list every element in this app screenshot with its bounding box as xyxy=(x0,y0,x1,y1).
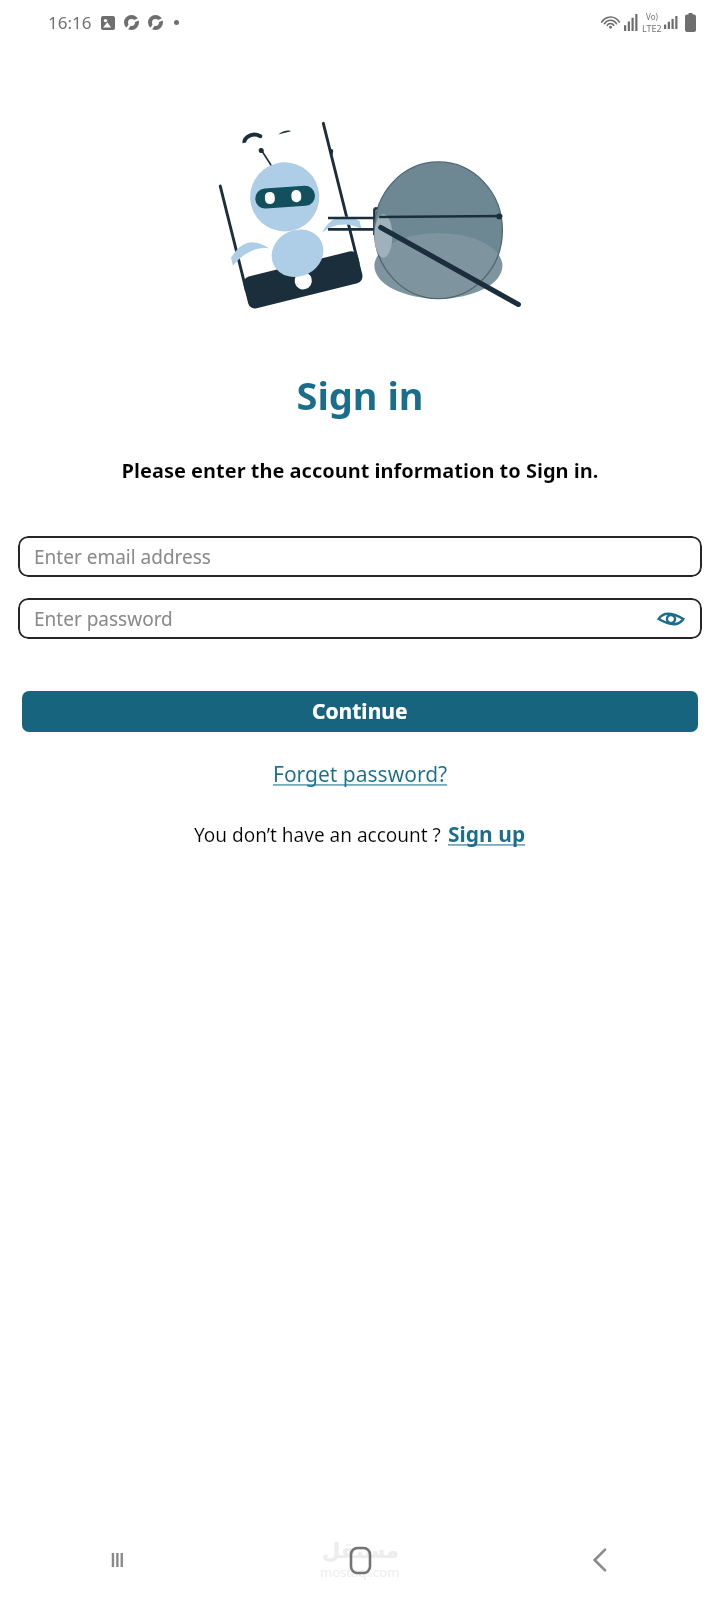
staticText: مستقل xyxy=(322,1539,399,1563)
staticText: Sign up xyxy=(448,820,526,849)
button[interactable]: Continue xyxy=(22,691,698,732)
button[interactable]: Enter password xyxy=(18,598,702,639)
button[interactable]: Forget password? xyxy=(0,753,720,796)
button[interactable]: Home xyxy=(240,1520,480,1600)
staticText: mostaql.com xyxy=(320,1563,400,1581)
button[interactable]: Show password xyxy=(654,602,688,636)
staticText: 16:16 xyxy=(48,11,92,34)
staticText: Sign in xyxy=(0,369,720,421)
button[interactable]: Recent apps xyxy=(0,1520,240,1600)
staticText: You don’t have an account ? xyxy=(194,822,441,848)
staticText: Enter email address xyxy=(34,544,211,570)
button[interactable]: Enter email address xyxy=(18,536,702,577)
button[interactable]: Back xyxy=(480,1520,720,1600)
button[interactable]: Sign up xyxy=(448,820,526,849)
staticText: LTE2 xyxy=(642,22,662,34)
staticText: Enter password xyxy=(34,606,173,632)
staticText: Vo) xyxy=(646,11,658,22)
staticText: Continue xyxy=(312,697,408,726)
staticText: Please enter the account information to … xyxy=(0,457,720,484)
staticText: Forget password? xyxy=(273,760,448,789)
